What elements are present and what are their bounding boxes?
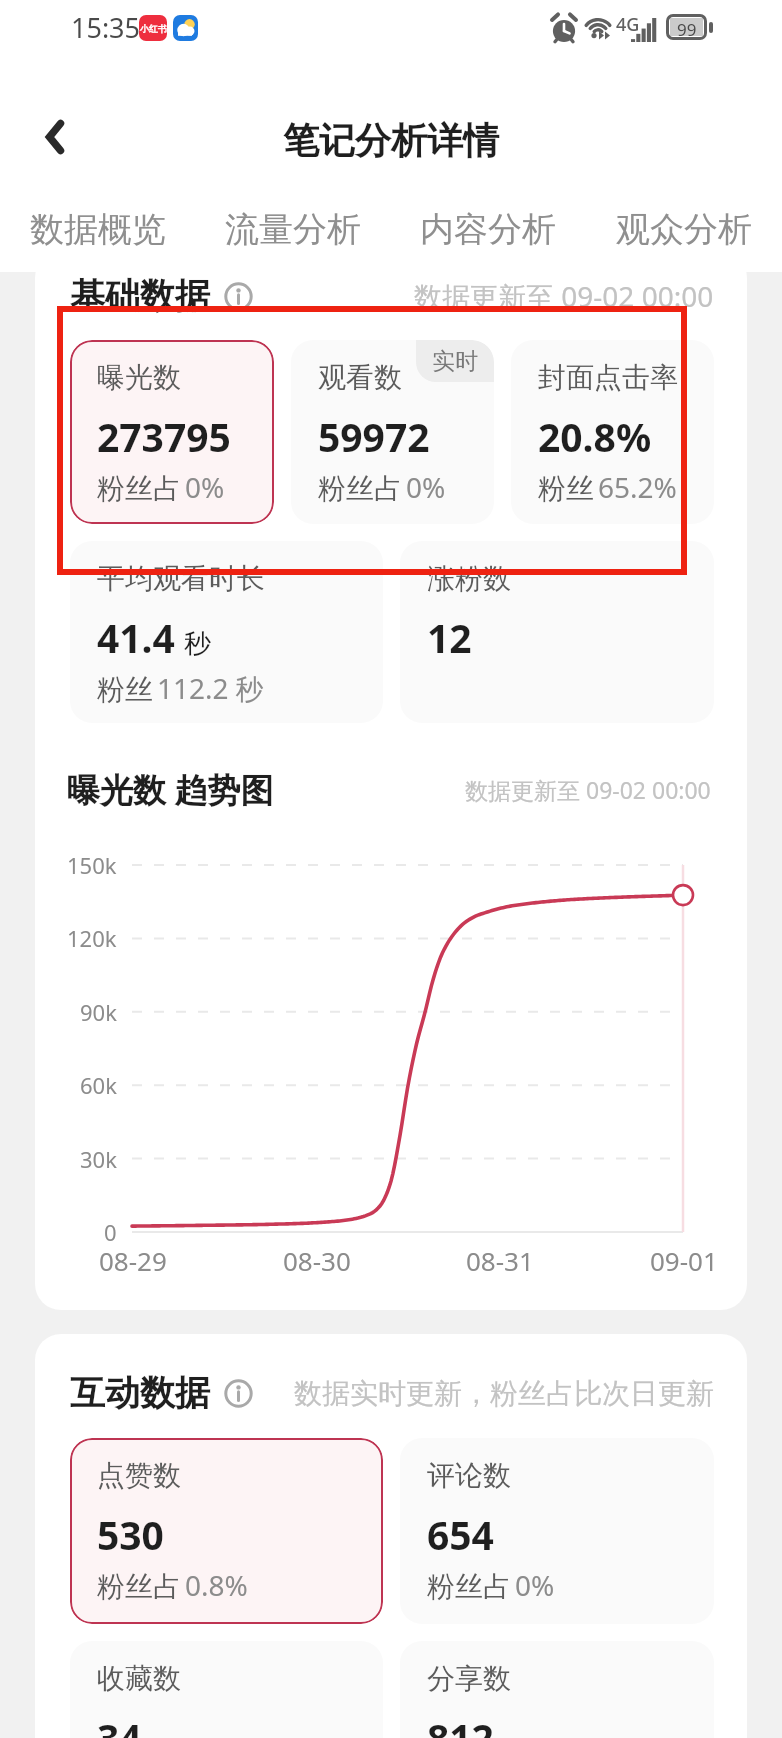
button[interactable]: 点赞数 [70, 1438, 383, 1624]
staticText: 12 [427, 611, 472, 664]
button[interactable]: 观众分析 [586, 190, 782, 268]
button[interactable]: 实时 [291, 340, 494, 524]
staticText: 点赞数 [97, 1458, 181, 1493]
staticText: 数据更新至 09-02 00:00 [465, 774, 711, 805]
staticText: 0 [104, 1217, 117, 1247]
staticText: 观众分析 [616, 208, 752, 251]
staticText: 99 [677, 18, 697, 36]
staticText: 实时 [432, 347, 478, 376]
button[interactable]: 内容分析 [390, 190, 586, 268]
staticText: 观看数 [318, 360, 402, 395]
staticText: 0% [185, 468, 225, 506]
staticText: 互动数据 [70, 1371, 210, 1415]
staticText: 粉丝占 [97, 1569, 181, 1604]
staticText: 0% [406, 468, 446, 506]
staticText: 粉丝 [538, 471, 594, 506]
staticText: 收藏数 [97, 1661, 181, 1696]
staticText: 08-30 [283, 1243, 351, 1278]
staticText: 20.8% [538, 410, 652, 463]
staticText: 90k [80, 997, 117, 1027]
staticText: 08-31 [466, 1243, 534, 1278]
staticText: 分享数 [427, 1661, 511, 1696]
button[interactable]: 收藏数 [70, 1641, 383, 1738]
button[interactable]: Back [25, 107, 85, 167]
staticText: 15:35 [71, 9, 141, 46]
staticText: 数据实时更新，粉丝占比次日更新 [294, 1376, 714, 1411]
staticText: 流量分析 [225, 208, 361, 251]
button[interactable]: 流量分析 [195, 190, 390, 268]
staticText: 4G [616, 12, 640, 37]
staticText: 150k [67, 850, 117, 880]
button[interactable]: 封面点击率 [511, 340, 714, 524]
staticText: 0.8% [185, 1566, 248, 1604]
staticText: 平均观看时长 [97, 561, 265, 596]
staticText: 60k [80, 1070, 117, 1100]
staticText: 粉丝占 [427, 1569, 511, 1604]
staticText: 08-29 [99, 1243, 167, 1278]
staticText: 数据更新至 09-02 00:00 [414, 277, 714, 315]
staticText: 59972 [318, 410, 430, 463]
button[interactable]: 平均观看时长 [70, 541, 383, 723]
staticText: 65.2% [598, 468, 677, 506]
button[interactable]: 曝光数 [70, 340, 274, 524]
staticText: 41.4 [97, 611, 175, 664]
staticText: 120k [67, 923, 117, 953]
staticText: 笔记分析详情 [283, 118, 499, 163]
staticText: 评论数 [427, 1458, 511, 1493]
staticText: 粉丝占 [318, 471, 402, 506]
staticText: 曝光数 趋势图 [67, 767, 274, 812]
staticText: 涨粉数 [427, 561, 511, 596]
staticText: 273795 [97, 410, 231, 463]
staticText: 30k [80, 1144, 117, 1174]
staticText: 0% [515, 1566, 555, 1604]
staticText: 小红书 [140, 23, 167, 34]
staticText: 粉丝 [97, 672, 153, 707]
staticText: 812 [427, 1711, 494, 1738]
staticText: 秒 [184, 627, 211, 661]
staticText: 基础数据 [70, 274, 210, 318]
button[interactable]: 涨粉数 [400, 541, 714, 723]
button[interactable]: 评论数 [400, 1438, 714, 1624]
staticText: 654 [427, 1508, 494, 1561]
button[interactable]: 数据概览 [0, 190, 195, 268]
staticText: 数据概览 [30, 208, 166, 251]
staticText: 530 [97, 1508, 164, 1561]
staticText: 封面点击率 [538, 360, 678, 395]
staticText: 曝光数 [97, 360, 181, 395]
staticText: 09-01 [650, 1243, 718, 1278]
staticText: 34 [97, 1711, 142, 1738]
button[interactable]: 分享数 [400, 1641, 714, 1738]
staticText: 112.2 秒 [157, 669, 264, 707]
staticText: 内容分析 [420, 208, 556, 251]
staticText: 粉丝占 [97, 471, 181, 506]
